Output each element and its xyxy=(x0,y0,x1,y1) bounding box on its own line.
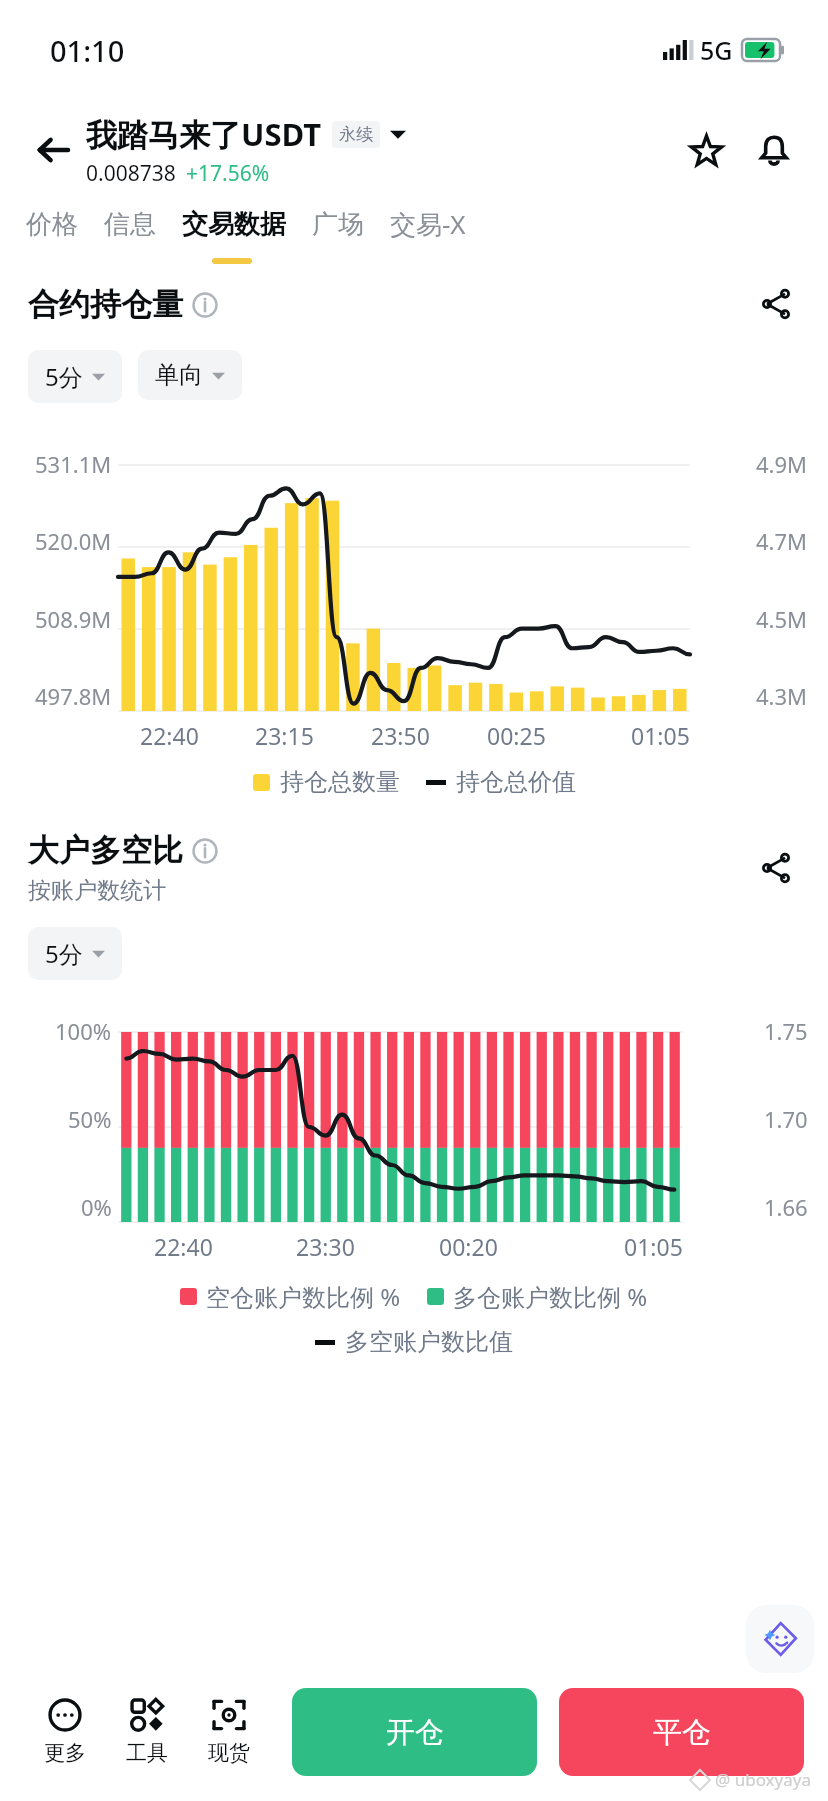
staticText: 23:15 xyxy=(255,720,314,751)
button[interactable]: Notifications xyxy=(746,122,802,178)
staticText: 交易数据 xyxy=(182,208,286,241)
staticText: 22:40 xyxy=(140,720,199,751)
staticText: 23:30 xyxy=(296,1231,355,1262)
staticText: 我踏马来了USDT xyxy=(86,113,322,155)
staticText: 00:20 xyxy=(439,1231,498,1262)
staticText: 22:40 xyxy=(154,1231,213,1262)
staticText: 00:25 xyxy=(487,720,546,751)
button[interactable]: 单向 xyxy=(138,350,242,400)
staticText: @ uboxyaya xyxy=(715,1768,812,1791)
staticText: 空仓账户数比例 % xyxy=(206,1280,401,1313)
button[interactable]: 平仓 xyxy=(559,1688,804,1776)
button[interactable]: Favorite xyxy=(678,122,734,178)
staticText: 开仓 xyxy=(386,1714,444,1751)
staticText: 01:10 xyxy=(50,31,125,70)
staticText: 大户多空比 xyxy=(28,831,183,870)
button[interactable]: 价格 xyxy=(26,202,104,247)
staticText: 广场 xyxy=(312,208,364,241)
staticText: 01:05 xyxy=(631,720,690,751)
button[interactable]: Share xyxy=(752,280,800,328)
staticText: 5分 xyxy=(45,937,83,970)
staticText: 多空账户数比值 xyxy=(345,1327,513,1357)
staticText: 0% xyxy=(81,1192,112,1222)
staticText: 01:05 xyxy=(624,1231,683,1262)
staticText: 按账户数统计 xyxy=(28,876,166,905)
staticText: 50% xyxy=(68,1104,112,1134)
staticText: 100% xyxy=(55,1016,112,1046)
staticText: 531.1M xyxy=(35,449,112,479)
staticText: 1.66 xyxy=(764,1192,808,1222)
staticText: 4.5M xyxy=(756,604,808,634)
staticText: 更多 xyxy=(44,1740,86,1766)
button[interactable]: 5分 xyxy=(28,350,122,403)
staticText: +17.56% xyxy=(186,159,270,188)
button[interactable]: 交易-X xyxy=(390,200,492,248)
button[interactable]: Info xyxy=(192,292,218,318)
staticText: 合约持仓量 xyxy=(28,285,183,324)
staticText: 23:50 xyxy=(371,720,430,751)
staticText: 497.8M xyxy=(35,681,112,711)
button[interactable]: Back xyxy=(26,123,80,177)
staticText: 永续 xyxy=(339,124,373,145)
staticText: 信息 xyxy=(104,208,156,241)
staticText: 4.9M xyxy=(756,449,808,479)
button[interactable]: 广场 xyxy=(312,202,390,247)
staticText: 520.0M xyxy=(35,526,112,556)
staticText: 1.75 xyxy=(764,1016,808,1046)
staticText: 价格 xyxy=(26,208,78,241)
staticText: 持仓总数量 xyxy=(280,767,400,797)
button[interactable]: AI assistant xyxy=(746,1605,814,1673)
button[interactable]: 工具 xyxy=(106,1692,188,1772)
button[interactable]: Share xyxy=(752,844,800,892)
button[interactable]: 信息 xyxy=(104,202,182,247)
button[interactable]: Info xyxy=(192,838,218,864)
staticText: 1.70 xyxy=(764,1104,808,1134)
button[interactable]: 开仓 xyxy=(292,1688,537,1776)
staticText: 4.7M xyxy=(756,526,808,556)
staticText: 工具 xyxy=(126,1740,168,1766)
staticText: 4.3M xyxy=(756,681,808,711)
staticText: 单向 xyxy=(155,360,203,390)
button[interactable]: 更多 xyxy=(24,1692,106,1772)
button[interactable]: 交易数据 xyxy=(182,202,312,247)
staticText: 5G xyxy=(700,33,733,67)
button[interactable]: Switch contract xyxy=(390,126,406,142)
staticText: 0.008738 xyxy=(86,159,176,188)
staticText: 508.9M xyxy=(35,604,112,634)
staticText: 交易-X xyxy=(390,206,466,242)
staticText: 现货 xyxy=(208,1740,250,1766)
staticText: 平仓 xyxy=(653,1714,711,1751)
button[interactable]: 现货 xyxy=(188,1692,270,1772)
staticText: 持仓总价值 xyxy=(456,767,576,797)
staticText: 5分 xyxy=(45,360,83,393)
button[interactable]: 5分 xyxy=(28,927,122,980)
staticText: 多仓账户数比例 % xyxy=(453,1280,648,1313)
